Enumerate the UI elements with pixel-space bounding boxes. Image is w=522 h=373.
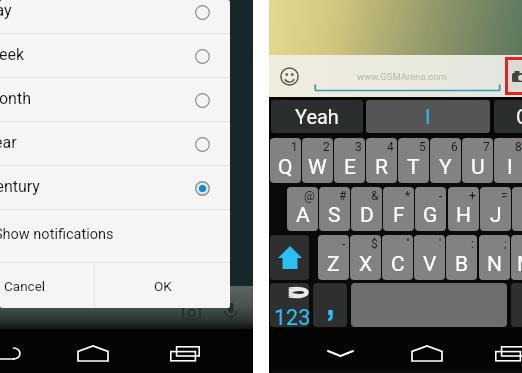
staticText: Show notifications	[0, 226, 114, 243]
button[interactable]: 8	[494, 138, 522, 183]
staticText: &	[371, 189, 379, 203]
staticText: M	[517, 252, 522, 277]
staticText: V	[423, 252, 437, 277]
staticText: N	[487, 252, 502, 277]
staticText: S	[328, 203, 341, 228]
staticText: "	[406, 237, 410, 251]
staticText: 5	[419, 140, 426, 154]
staticText: +	[469, 189, 476, 203]
staticText: 8	[515, 140, 522, 154]
staticText: :	[471, 237, 474, 251]
staticText: I	[425, 105, 431, 128]
button[interactable]: Day	[0, 0, 230, 34]
button[interactable]: ;	[479, 235, 510, 280]
staticText: Q	[278, 155, 293, 180]
button[interactable]	[313, 283, 347, 327]
button[interactable]: Hide keyboard	[317, 335, 363, 371]
staticText: F	[393, 203, 405, 228]
button[interactable]: Recent apps	[487, 335, 522, 371]
staticText: G	[423, 203, 438, 228]
staticText: Week	[0, 45, 25, 64]
staticText: X	[359, 252, 373, 277]
button[interactable]: 7	[462, 138, 493, 183]
staticText: 2	[323, 140, 330, 154]
staticText: ;	[504, 237, 507, 251]
staticText: Month	[0, 89, 31, 108]
staticText: C	[516, 105, 522, 128]
staticText: Year	[0, 133, 17, 152]
button[interactable]: &	[351, 187, 382, 231]
button[interactable]: Symbols	[270, 283, 309, 327]
staticText: W	[308, 155, 327, 180]
staticText: 6	[451, 140, 458, 154]
staticText: Cancel	[4, 278, 46, 294]
button[interactable]: 1	[270, 138, 301, 183]
button[interactable]: Shift	[270, 235, 309, 280]
staticText: 7	[483, 140, 490, 154]
staticText: =	[501, 189, 508, 203]
staticText: OK	[154, 278, 172, 294]
staticText: -	[439, 189, 443, 203]
staticText: T	[407, 155, 420, 180]
button[interactable]: Yeah	[271, 100, 363, 133]
button[interactable]: (	[512, 187, 522, 231]
button[interactable]: Cancel	[0, 264, 94, 308]
staticText: -	[342, 237, 346, 251]
button[interactable]: 2	[302, 138, 333, 183]
button[interactable]: 5	[398, 138, 429, 183]
staticText: Century	[0, 177, 40, 196]
staticText: '	[439, 237, 442, 251]
staticText: D	[360, 203, 374, 228]
button[interactable]: Period	[511, 283, 522, 327]
button[interactable]: =	[480, 187, 511, 231]
staticText: $	[371, 237, 378, 251]
button[interactable]: #	[319, 187, 350, 231]
staticText: Day	[0, 1, 12, 20]
staticText: I	[507, 155, 513, 180]
button[interactable]: Back	[0, 334, 32, 372]
button[interactable]: I	[366, 100, 490, 133]
button[interactable]: Camera	[508, 60, 522, 92]
button[interactable]: Space	[351, 283, 507, 327]
button[interactable]: 4	[366, 138, 397, 183]
staticText: 1	[291, 140, 298, 154]
staticText: 123	[274, 305, 309, 327]
button[interactable]: Recent apps	[162, 334, 207, 372]
button[interactable]: +	[448, 187, 479, 231]
button[interactable]: Week	[0, 34, 230, 78]
button[interactable]: :	[446, 235, 477, 280]
staticText: #	[339, 189, 347, 203]
button[interactable]: Show notifications	[0, 210, 230, 263]
button[interactable]: 3	[334, 138, 365, 183]
staticText: 3	[355, 140, 362, 154]
button[interactable]: Year	[0, 122, 230, 166]
button[interactable]: 6	[430, 138, 461, 183]
button[interactable]: Century	[0, 166, 230, 210]
button[interactable]: '	[414, 235, 445, 280]
button[interactable]: @	[287, 187, 318, 231]
button[interactable]: /	[511, 235, 522, 280]
staticText: B	[455, 252, 469, 277]
staticText: E	[344, 155, 356, 180]
button[interactable]: "	[382, 235, 413, 280]
staticText: C	[391, 252, 405, 277]
staticText: 4	[387, 140, 394, 154]
staticText: U	[471, 155, 485, 180]
staticText: Z	[327, 252, 340, 277]
staticText: @	[304, 189, 315, 203]
staticText: *	[405, 189, 411, 203]
button[interactable]: $	[350, 235, 381, 280]
button[interactable]: Home	[404, 335, 450, 371]
button[interactable]: *	[383, 187, 414, 231]
staticText: A	[296, 203, 310, 228]
button[interactable]: OK	[95, 264, 230, 308]
staticText: R	[375, 155, 388, 180]
button[interactable]: Home	[70, 334, 115, 372]
button[interactable]: Month	[0, 78, 230, 122]
button[interactable]: -	[318, 235, 349, 280]
button[interactable]: -	[415, 187, 446, 231]
staticText: H	[456, 203, 471, 228]
button[interactable]: C	[494, 100, 522, 133]
staticText: Y	[439, 155, 452, 180]
